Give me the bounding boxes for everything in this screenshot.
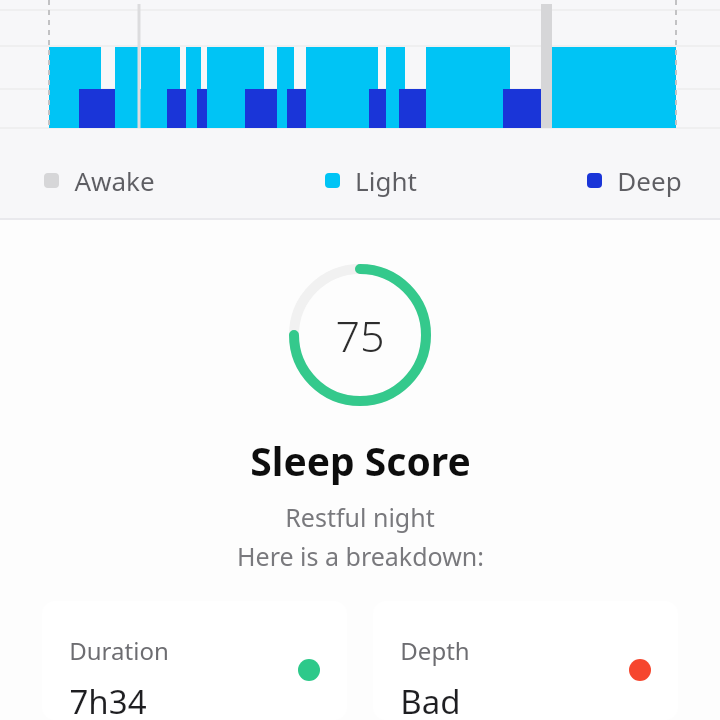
staticText: Light (355, 163, 417, 198)
staticText: Bad (400, 679, 461, 720)
button[interactable]: Deep (587, 163, 682, 198)
button[interactable]: Light (325, 163, 417, 198)
staticText: Here is a breakdown: (237, 539, 484, 573)
staticText: Duration (69, 634, 169, 667)
staticText: Restful night (285, 500, 435, 534)
button[interactable]: Duration (42, 601, 347, 720)
button[interactable]: Sleep score 75 out of 100 (289, 264, 431, 406)
staticText: 75 (335, 306, 385, 365)
staticText: 7h34 (69, 679, 147, 720)
staticText: Awake (74, 163, 155, 198)
button[interactable]: Awake (44, 163, 155, 198)
staticText: Deep (617, 163, 682, 198)
staticText: Sleep Score (250, 434, 471, 487)
staticText: Depth (400, 634, 470, 667)
button[interactable]: Depth (373, 601, 678, 720)
